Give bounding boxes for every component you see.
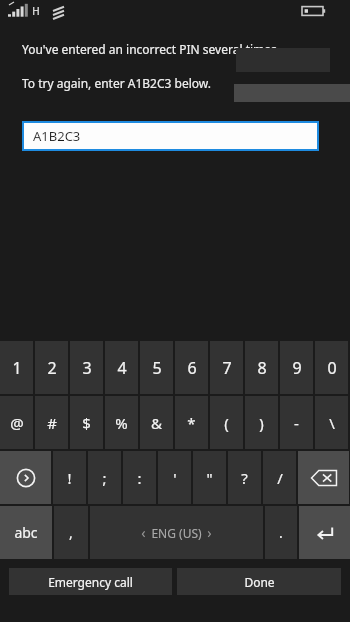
button[interactable]: 9 bbox=[280, 341, 313, 394]
button[interactable]: - bbox=[280, 396, 313, 449]
staticText: 9 bbox=[292, 357, 302, 379]
staticText: To try again, enter A1B2C3 below. bbox=[22, 75, 211, 91]
staticText: " bbox=[206, 468, 213, 488]
button[interactable]: ( bbox=[210, 396, 243, 449]
button[interactable]: ? bbox=[228, 451, 261, 504]
staticText: › bbox=[207, 523, 212, 542]
button[interactable]: ‹ bbox=[90, 506, 263, 559]
staticText: & bbox=[151, 413, 162, 433]
staticText: 8 bbox=[257, 357, 267, 379]
staticText: @ bbox=[10, 413, 24, 433]
staticText: / bbox=[277, 468, 283, 488]
button[interactable]: 2 bbox=[35, 341, 68, 394]
button[interactable]: 5 bbox=[140, 341, 173, 394]
button[interactable]: Backspace bbox=[298, 451, 349, 504]
button[interactable]: 8 bbox=[245, 341, 278, 394]
button[interactable]: $ bbox=[70, 396, 103, 449]
staticText: , bbox=[69, 523, 73, 542]
staticText: A1B2C3 bbox=[33, 127, 81, 145]
button[interactable]: @ bbox=[0, 396, 33, 449]
button[interactable]: . bbox=[265, 506, 297, 559]
staticText: 4 bbox=[117, 357, 127, 379]
button[interactable]: & bbox=[140, 396, 173, 449]
staticText: ) bbox=[259, 413, 264, 433]
staticText: # bbox=[47, 413, 57, 433]
staticText: \ bbox=[329, 413, 335, 433]
staticText: ( bbox=[224, 413, 229, 433]
button[interactable]: 1 bbox=[0, 341, 33, 394]
button[interactable]: , bbox=[54, 506, 88, 559]
staticText: abc bbox=[14, 523, 38, 542]
staticText: Done bbox=[244, 574, 275, 590]
staticText: ; bbox=[102, 468, 107, 488]
button[interactable]: abc bbox=[0, 506, 52, 559]
button[interactable]: Done bbox=[177, 568, 341, 595]
button[interactable]: # bbox=[35, 396, 68, 449]
staticText: H bbox=[32, 4, 40, 18]
button[interactable]: \ bbox=[315, 396, 348, 449]
staticText: * bbox=[187, 413, 196, 433]
staticText: ! bbox=[67, 468, 72, 488]
button[interactable]: / bbox=[263, 451, 296, 504]
button[interactable]: ; bbox=[88, 451, 121, 504]
staticText: . bbox=[279, 523, 283, 542]
button[interactable]: 6 bbox=[175, 341, 208, 394]
staticText: Emergency call bbox=[48, 574, 133, 590]
staticText: % bbox=[115, 413, 128, 433]
button[interactable]: 7 bbox=[210, 341, 243, 394]
button[interactable]: 3 bbox=[70, 341, 103, 394]
staticText: - bbox=[294, 413, 299, 433]
staticText: 0 bbox=[327, 357, 337, 379]
button[interactable]: " bbox=[193, 451, 226, 504]
button[interactable]: ! bbox=[53, 451, 86, 504]
staticText: ‹ bbox=[141, 523, 146, 542]
button[interactable]: % bbox=[105, 396, 138, 449]
button[interactable]: Emergency call bbox=[9, 568, 172, 595]
staticText: ? bbox=[241, 468, 248, 488]
staticText: ' bbox=[173, 468, 177, 488]
staticText: 7 bbox=[222, 357, 232, 379]
button[interactable]: 0 bbox=[315, 341, 348, 394]
button[interactable]: ' bbox=[158, 451, 191, 504]
staticText: 6 bbox=[187, 357, 197, 379]
staticText: : bbox=[137, 468, 142, 488]
button[interactable]: : bbox=[123, 451, 156, 504]
staticText: ENG (US) bbox=[151, 525, 202, 541]
staticText: You've entered an incorrect PIN several … bbox=[22, 41, 281, 57]
button[interactable]: Enter bbox=[299, 506, 350, 559]
staticText: 3 bbox=[82, 357, 92, 379]
button[interactable]: 4 bbox=[105, 341, 138, 394]
staticText: 1 bbox=[12, 357, 22, 379]
staticText: 5 bbox=[152, 357, 162, 379]
staticText: $ bbox=[82, 413, 91, 433]
staticText: 2 bbox=[47, 357, 57, 379]
button[interactable]: A1B2C3 bbox=[24, 123, 317, 149]
button[interactable]: ) bbox=[245, 396, 278, 449]
button[interactable]: More symbols bbox=[0, 451, 51, 504]
button[interactable]: * bbox=[175, 396, 208, 449]
